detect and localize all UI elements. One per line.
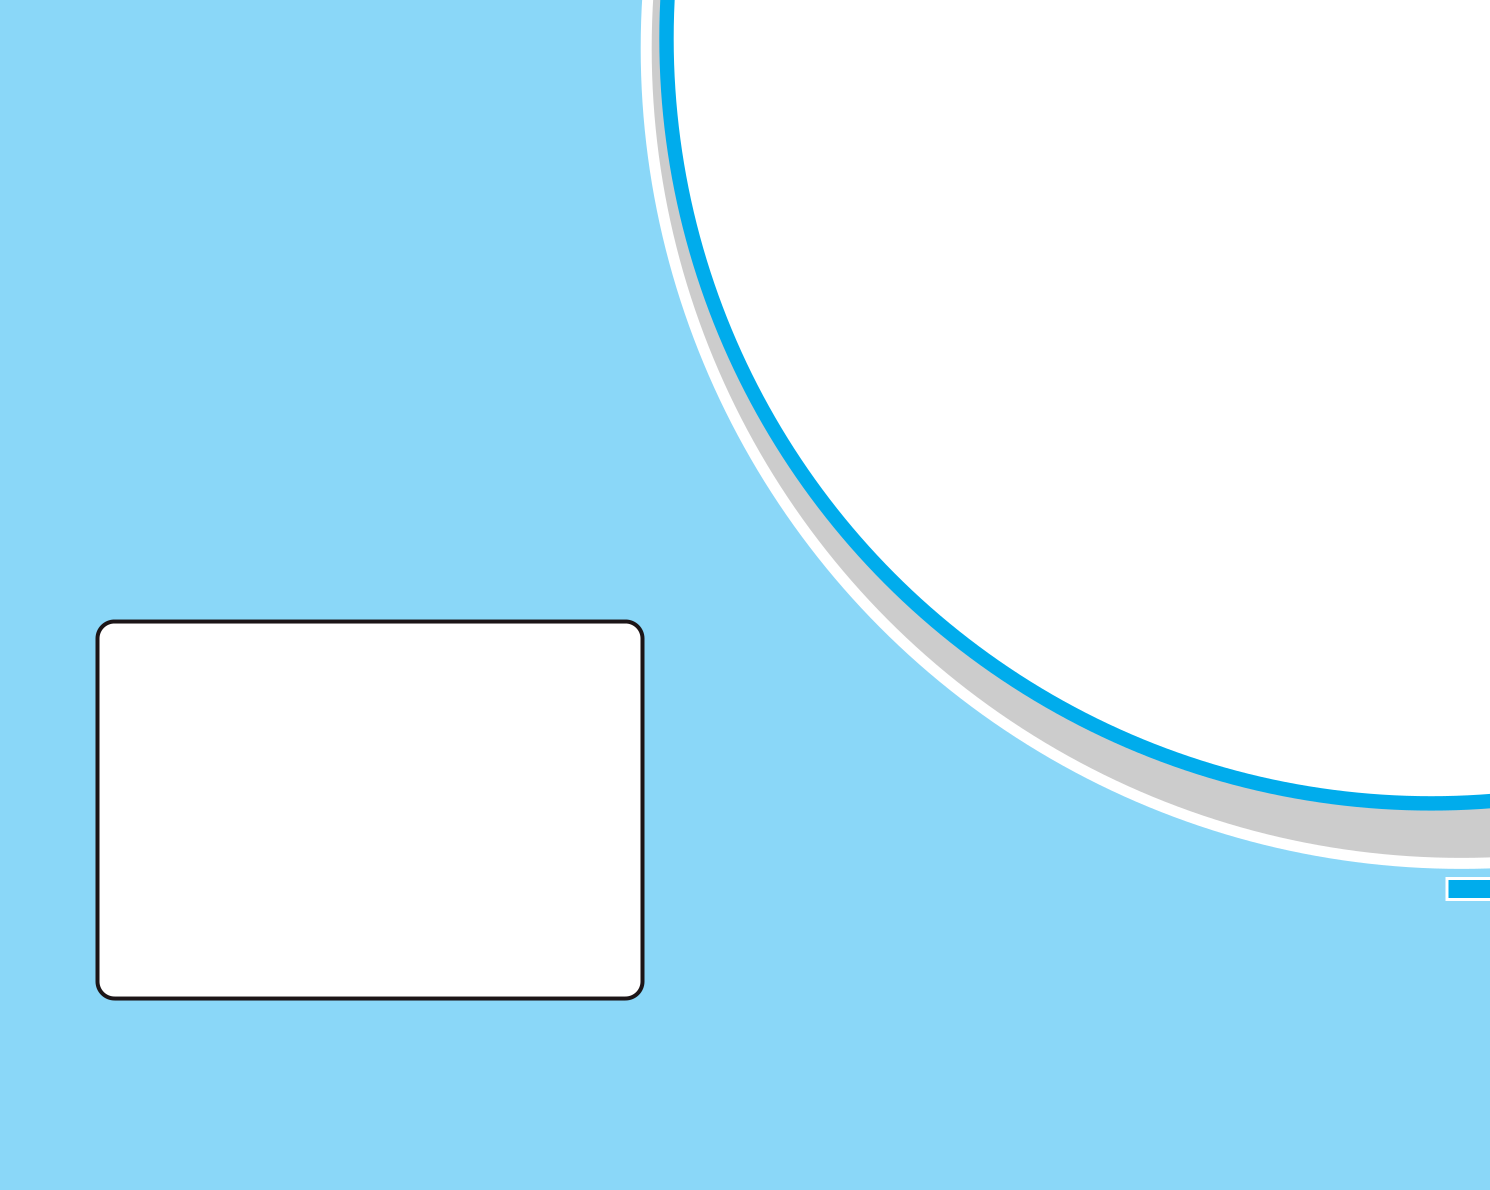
- button[interactable]: Card: [97, 621, 642, 998]
- button[interactable]: Badge: [1445, 877, 1490, 901]
